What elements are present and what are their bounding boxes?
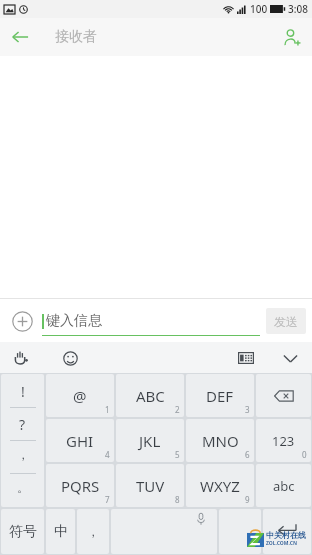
staticText: WXYZ: [200, 476, 240, 496]
staticText: 中关村在线: [266, 530, 306, 540]
staticText: 接收者: [55, 28, 97, 46]
button[interactable]: Input method settings: [219, 509, 261, 554]
staticText: 发送: [274, 314, 298, 329]
staticText: 符号: [9, 523, 37, 541]
button[interactable]: abc: [256, 464, 311, 507]
button[interactable]: DEF: [186, 374, 254, 417]
button[interactable]: Hide keyboard: [276, 344, 304, 372]
staticText: 3:08: [288, 2, 308, 16]
staticText: 7: [105, 494, 110, 505]
button[interactable]: 中: [46, 509, 75, 554]
button[interactable]: ?: [1, 408, 44, 441]
button[interactable]: ，: [77, 509, 109, 554]
staticText: 5: [175, 449, 180, 460]
staticText: ZOL.COM.CN: [266, 540, 297, 547]
staticText: MNO: [202, 431, 239, 451]
staticText: 2: [175, 404, 180, 415]
button[interactable]: Add attachment: [6, 305, 38, 337]
button[interactable]: 。: [1, 474, 44, 507]
button[interactable]: 发送: [266, 308, 306, 334]
button[interactable]: Handwriting input: [6, 344, 34, 372]
button[interactable]: PQRS: [46, 464, 114, 507]
staticText: ABC: [136, 386, 165, 406]
button[interactable]: 123: [256, 419, 311, 462]
staticText: 100: [250, 2, 268, 16]
staticText: PQRS: [61, 476, 100, 496]
staticText: 6: [245, 449, 250, 460]
button[interactable]: ABC: [116, 374, 184, 417]
staticText: ，: [87, 524, 99, 539]
staticText: 键入信息: [46, 312, 102, 330]
staticText: ?: [19, 415, 26, 434]
button[interactable]: 键入信息: [42, 299, 260, 342]
staticText: !: [21, 382, 25, 401]
button[interactable]: MNO: [186, 419, 254, 462]
button[interactable]: TUV: [116, 464, 184, 507]
button[interactable]: Emoji: [56, 344, 84, 372]
staticText: 中: [54, 523, 68, 541]
staticText: 3: [245, 404, 250, 415]
staticText: JKL: [139, 431, 161, 451]
staticText: 0: [302, 449, 307, 460]
staticText: abc: [273, 477, 295, 495]
button[interactable]: Back: [0, 18, 40, 56]
staticText: 123: [272, 432, 295, 450]
button[interactable]: Space and voice input: [111, 509, 217, 554]
button[interactable]: ，: [1, 441, 44, 474]
staticText: @: [73, 386, 87, 406]
staticText: ，: [17, 447, 29, 462]
staticText: TUV: [136, 476, 165, 496]
staticText: 4: [105, 449, 110, 460]
button[interactable]: Switch keyboard layout: [232, 344, 260, 372]
button[interactable]: @: [46, 374, 114, 417]
button[interactable]: GHI: [46, 419, 114, 462]
staticText: 8: [175, 494, 180, 505]
staticText: DEF: [206, 386, 234, 406]
button[interactable]: Enter: [263, 509, 311, 554]
staticText: 9: [245, 494, 250, 505]
button[interactable]: 符号: [1, 509, 44, 554]
button[interactable]: Backspace: [256, 374, 311, 417]
staticText: GHI: [66, 431, 94, 451]
button[interactable]: Add recipient: [272, 18, 312, 56]
button[interactable]: WXYZ: [186, 464, 254, 507]
staticText: 1: [105, 404, 110, 415]
button[interactable]: !: [1, 374, 44, 408]
button[interactable]: JKL: [116, 419, 184, 462]
staticText: 。: [17, 480, 29, 495]
